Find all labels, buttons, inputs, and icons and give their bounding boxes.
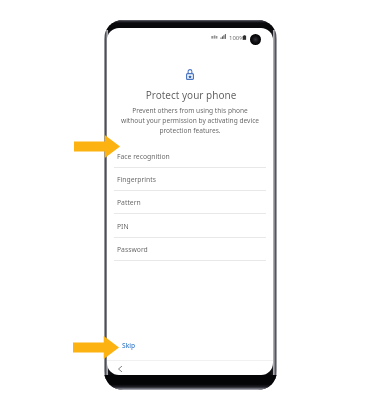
button[interactable]: Back — [108, 362, 132, 375]
button[interactable]: Skip — [122, 341, 136, 350]
staticText: Fingerprints — [117, 175, 156, 184]
staticText: PIN — [117, 222, 129, 231]
staticText: Protect your phone — [108, 88, 273, 102]
staticText: Face recognition — [117, 152, 170, 161]
button[interactable]: Pattern — [107, 191, 273, 214]
button[interactable]: Password — [107, 238, 273, 261]
staticText: 100% — [229, 34, 245, 42]
staticText: Skip — [122, 341, 136, 350]
button[interactable]: PIN — [107, 215, 273, 238]
staticText: Pattern — [117, 198, 141, 207]
button[interactable]: Fingerprints — [107, 168, 273, 191]
button[interactable]: Face recognition — [107, 145, 273, 168]
staticText: Password — [117, 245, 148, 254]
staticText: Prevent others from using this phone wit… — [107, 106, 273, 135]
